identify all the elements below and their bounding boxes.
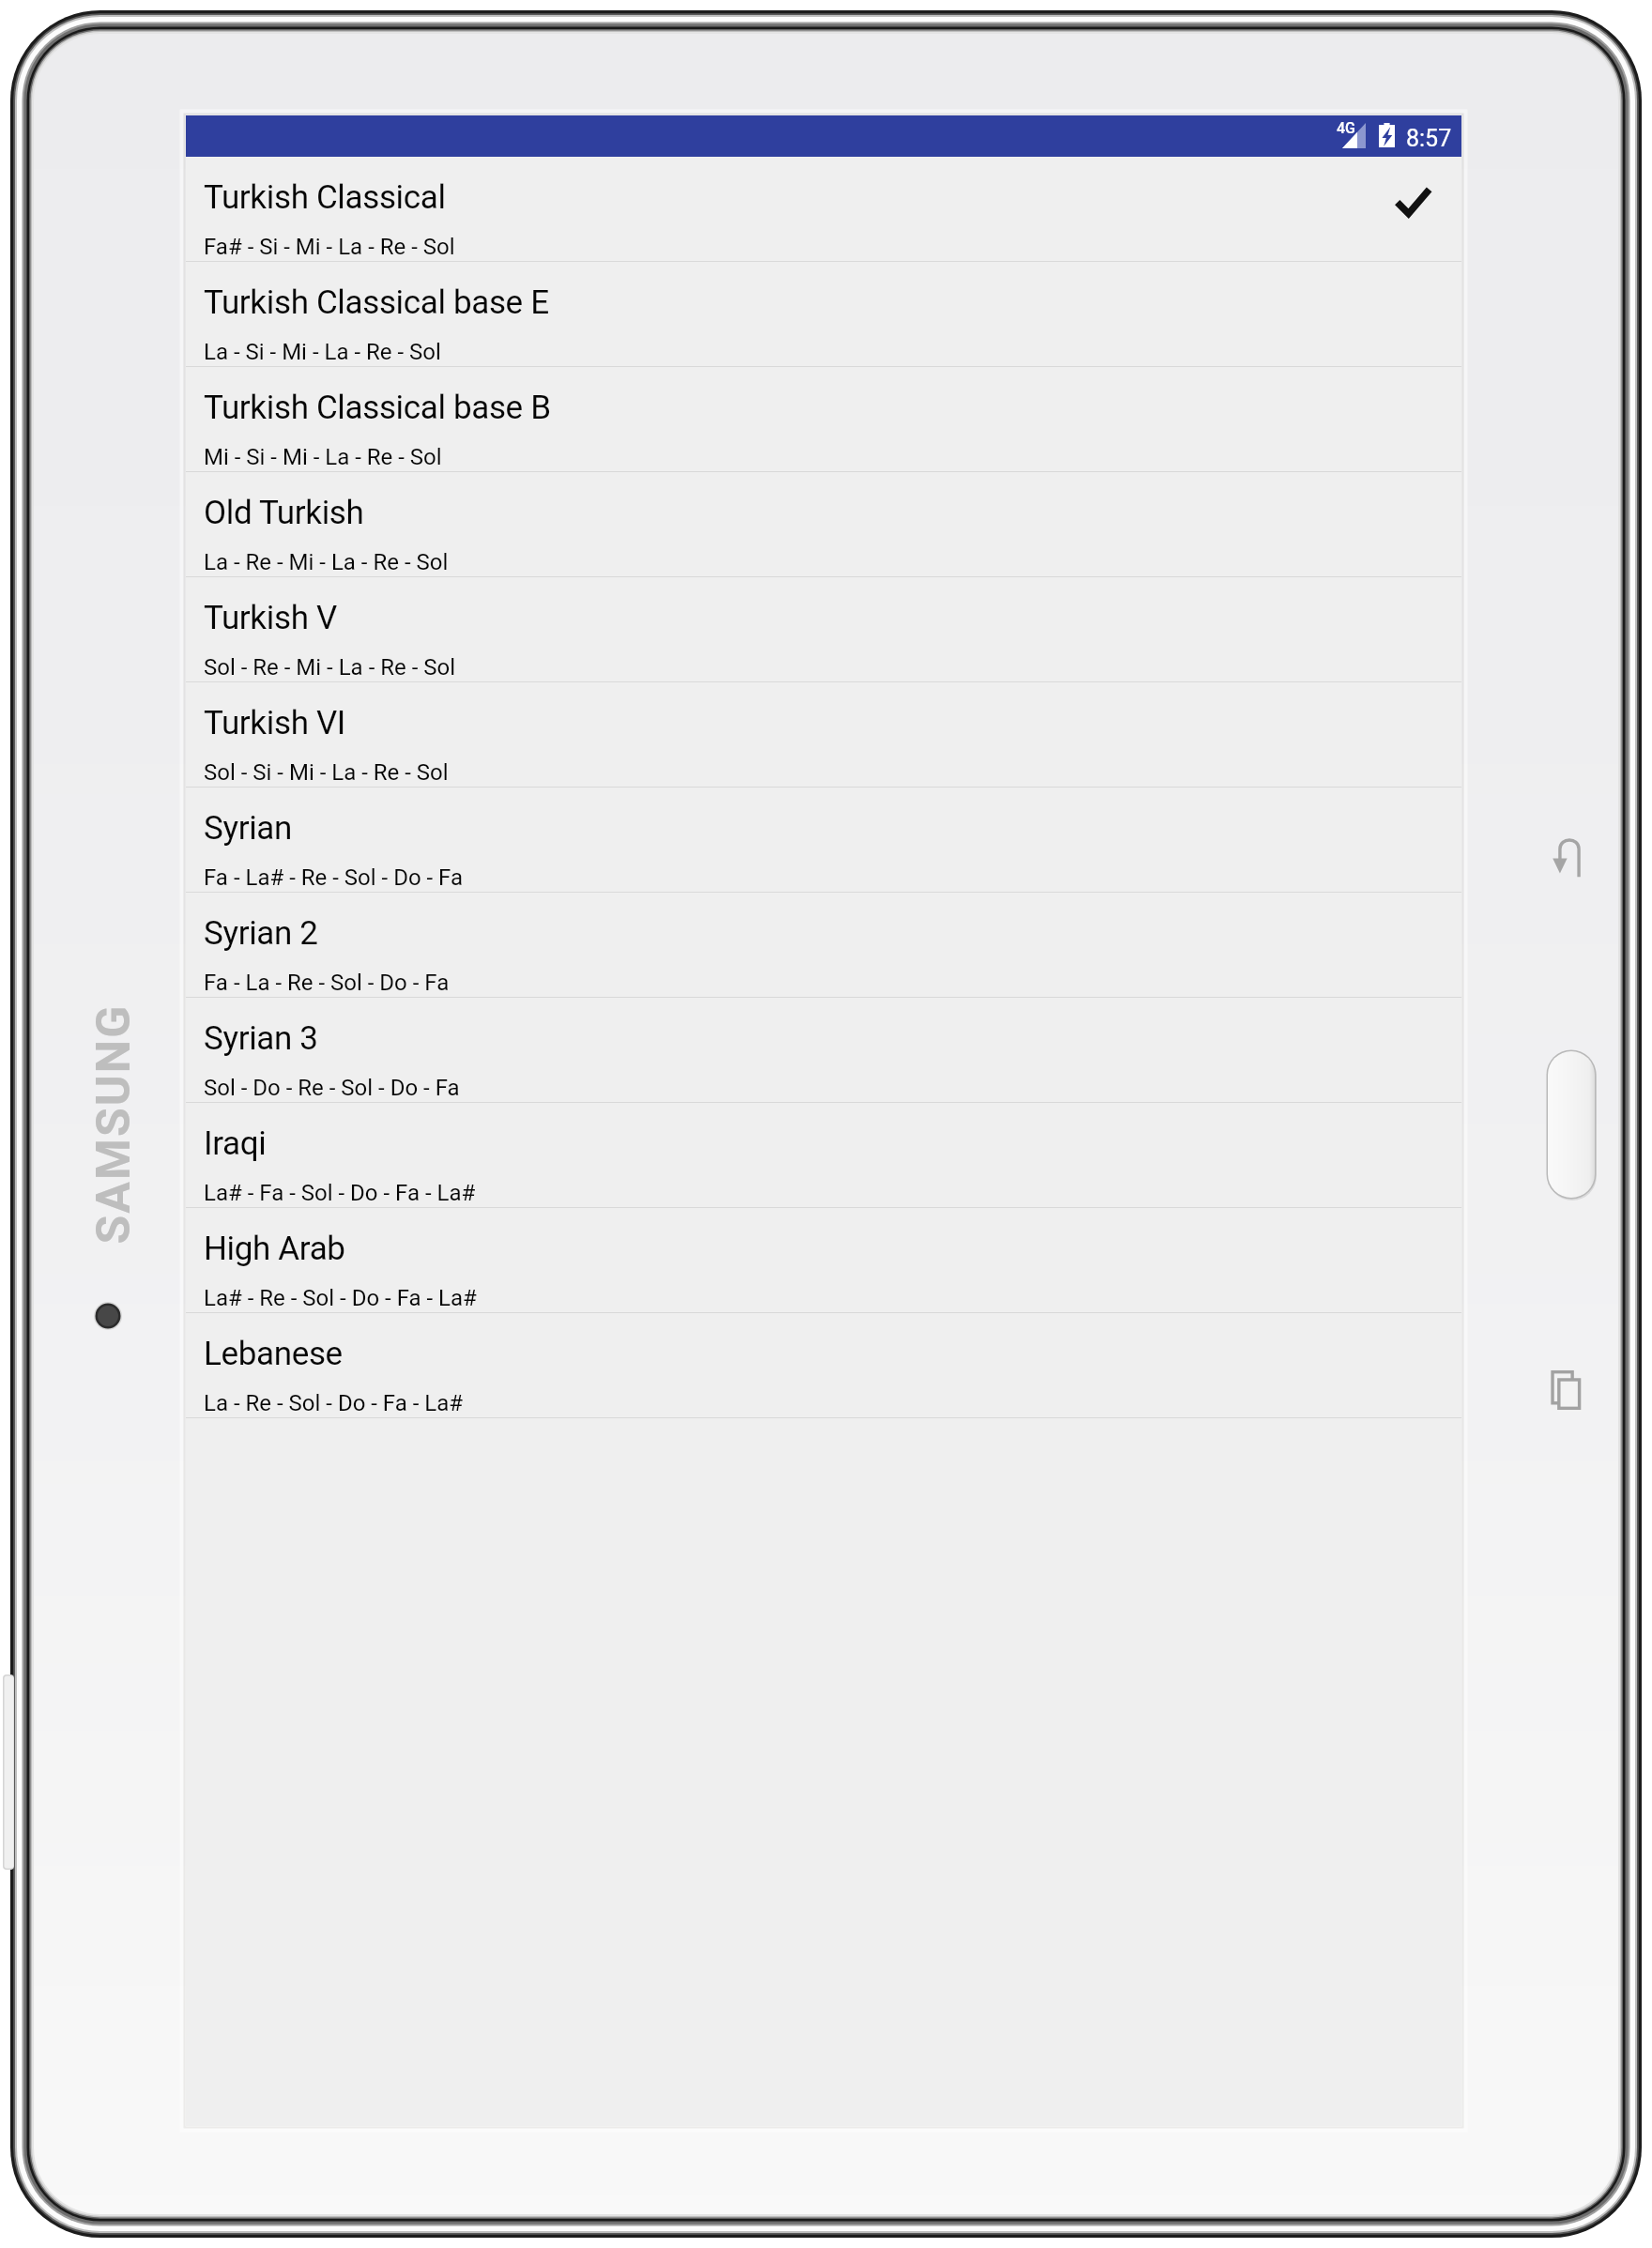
- button[interactable]: Back: [1551, 836, 1581, 879]
- staticText: 8:57: [1406, 125, 1452, 152]
- staticText: Turkish Classical base E: [204, 283, 549, 322]
- staticText: Turkish V: [204, 599, 337, 637]
- staticText: Lebanese: [204, 1335, 343, 1373]
- staticText: Turkish VI: [204, 704, 345, 742]
- staticText: Mi - Si - Mi - La - Re - Sol: [204, 444, 442, 470]
- button[interactable]: Syrian: [186, 788, 1461, 892]
- button[interactable]: Iraqi: [186, 1103, 1461, 1207]
- button[interactable]: Turkish VI: [186, 682, 1461, 787]
- button[interactable]: Turkish V: [186, 577, 1461, 681]
- staticText: SAMSUNG: [86, 1004, 141, 1244]
- staticText: Fa - La - Re - Sol - Do - Fa: [204, 970, 450, 996]
- staticText: La# - Fa - Sol - Do - Fa - La#: [204, 1180, 476, 1206]
- staticText: La - Si - Mi - La - Re - Sol: [204, 339, 441, 365]
- staticText: La - Re - Mi - La - Re - Sol: [204, 549, 449, 575]
- staticText: Sol - Si - Mi - La - Re - Sol: [204, 759, 449, 786]
- staticText: 4G: [1337, 119, 1355, 137]
- button[interactable]: Syrian 3: [186, 998, 1461, 1102]
- button[interactable]: High Arab: [186, 1208, 1461, 1312]
- staticText: Sol - Do - Re - Sol - Do - Fa: [204, 1075, 460, 1101]
- button[interactable]: Lebanese: [186, 1313, 1461, 1417]
- staticText: Syrian: [204, 809, 292, 848]
- staticText: Syrian 2: [204, 914, 318, 953]
- staticText: Turkish Classical: [204, 178, 446, 217]
- button[interactable]: Turkish Classical base E: [186, 262, 1461, 366]
- staticText: La - Re - Sol - Do - Fa - La#: [204, 1390, 464, 1416]
- staticText: Fa - La# - Re - Sol - Do - Fa: [204, 864, 464, 891]
- staticText: Sol - Re - Mi - La - Re - Sol: [204, 654, 456, 681]
- staticText: Syrian 3: [204, 1019, 318, 1058]
- staticText: High Arab: [204, 1230, 345, 1268]
- staticText: La# - Re - Sol - Do - Fa - La#: [204, 1285, 477, 1311]
- button[interactable]: Syrian 2: [186, 893, 1461, 997]
- button[interactable]: Turkish Classical: [186, 157, 1461, 261]
- staticText: Fa# - Si - Mi - La - Re - Sol: [204, 234, 455, 260]
- button[interactable]: Turkish Classical base B: [186, 367, 1461, 471]
- staticText: Turkish Classical base B: [204, 389, 551, 427]
- staticText: Old Turkish: [204, 494, 364, 532]
- staticText: Iraqi: [204, 1124, 267, 1163]
- button[interactable]: Recent apps: [1551, 1369, 1583, 1412]
- button[interactable]: Old Turkish: [186, 472, 1461, 576]
